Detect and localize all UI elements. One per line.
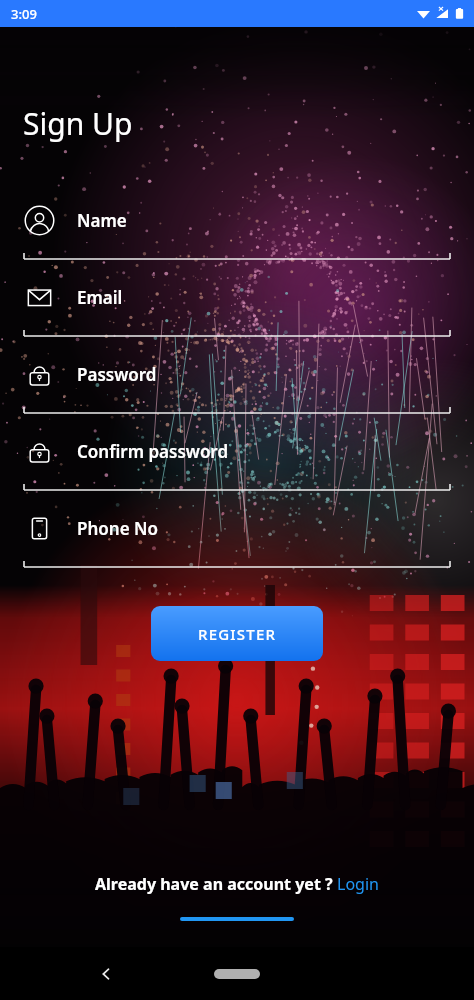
staticText: Phone No xyxy=(77,517,158,540)
button[interactable]: REGISTER xyxy=(151,606,323,661)
button[interactable]: Back xyxy=(91,959,121,989)
button[interactable]: Password xyxy=(0,346,474,423)
staticText: 3:09 xyxy=(11,5,37,23)
button[interactable]: Confirm password xyxy=(0,423,474,500)
staticText: Password xyxy=(77,363,157,386)
button[interactable]: Home xyxy=(214,969,260,979)
staticText: REGISTER xyxy=(198,624,277,644)
staticText: Confirm password xyxy=(77,440,229,463)
button[interactable]: Phone No xyxy=(0,500,474,577)
staticText: Email xyxy=(77,286,123,309)
staticText: Sign Up xyxy=(23,103,133,144)
button[interactable]: Name xyxy=(0,192,474,269)
button[interactable]: Login xyxy=(337,873,379,895)
button[interactable]: Email xyxy=(0,269,474,346)
staticText: Already have an account yet ? xyxy=(95,873,337,895)
staticText: Name xyxy=(77,209,127,232)
